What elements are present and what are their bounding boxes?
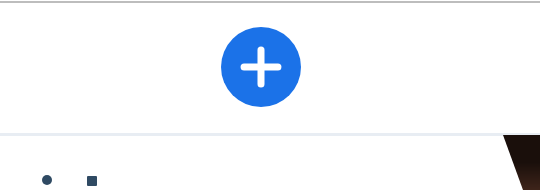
button[interactable]: Add: [221, 27, 301, 107]
button[interactable]: Square marker: [87, 176, 97, 186]
button[interactable]: Dot marker: [42, 175, 52, 185]
